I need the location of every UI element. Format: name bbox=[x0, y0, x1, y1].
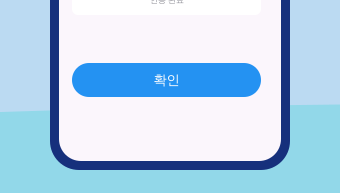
button[interactable]: 확인 bbox=[72, 63, 261, 97]
staticText: 확인 bbox=[153, 72, 179, 88]
staticText: 인증 완료 bbox=[150, 0, 184, 5]
